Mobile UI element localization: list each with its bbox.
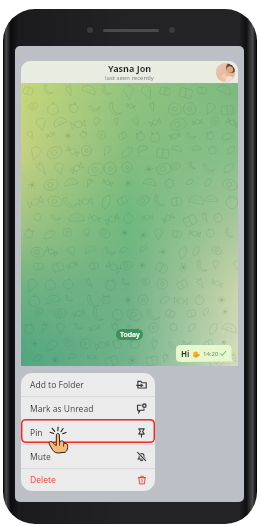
staticText: Add to Folder [30,379,84,391]
staticText: last seen recently [105,74,154,82]
staticText: 14:20 [203,350,219,358]
staticText: Yasna Jon [108,62,152,74]
button[interactable]: Add to Folder [21,373,155,396]
staticText: Mute [30,451,51,463]
button[interactable]: Profile photo [216,63,235,82]
staticText: Today [120,330,140,340]
staticText: Pin [30,427,43,439]
other: Mute [136,451,147,462]
button[interactable]: Today [116,329,143,340]
other: Mark as Unread [136,403,147,414]
staticText: Hi [181,348,190,359]
button[interactable]: Mute [21,445,155,468]
other: Delete [137,475,147,485]
other: Add to Folder [136,379,147,390]
staticText: Mark as Unread [30,403,94,415]
other: Pin [136,427,147,438]
staticText: Delete [30,474,56,486]
button[interactable]: Pin [21,421,155,444]
button[interactable]: Mark as Unread [21,397,155,420]
button[interactable]: Delete [21,469,155,491]
button[interactable]: Hi [176,345,234,362]
